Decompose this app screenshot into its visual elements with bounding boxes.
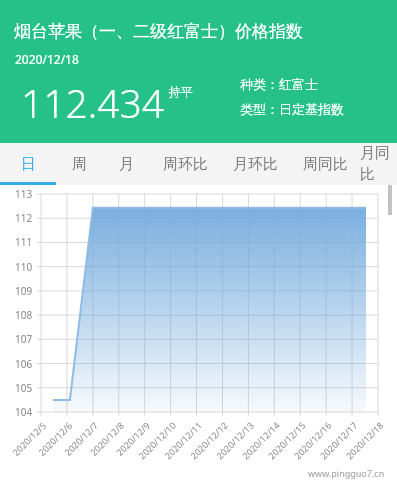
button[interactable]: 月 — [103, 143, 150, 185]
button[interactable]: 月同比 — [360, 143, 397, 185]
button[interactable]: 周环比 — [150, 143, 220, 185]
staticText: 日 — [21, 155, 36, 174]
staticText: 持平 — [169, 84, 193, 99]
staticText: 月环比 — [233, 155, 278, 174]
staticText: 周环比 — [163, 155, 208, 174]
staticText: 类型：日定基指数 — [240, 101, 344, 117]
button[interactable]: 周 — [56, 143, 103, 185]
button[interactable]: 月环比 — [220, 143, 290, 185]
staticText: 112.434 — [21, 76, 165, 129]
button[interactable]: 日 — [0, 143, 56, 185]
staticText: 月 — [119, 155, 134, 174]
staticText: 月同比 — [360, 144, 397, 184]
staticText: 种类：红富士 — [240, 76, 318, 92]
button[interactable]: 周同比 — [290, 143, 360, 185]
staticText: 烟台苹果（一、二级红富士）价格指数 — [14, 21, 303, 42]
staticText: 周 — [72, 155, 87, 174]
staticText: 周同比 — [303, 155, 348, 174]
staticText: 2020/12/18 — [15, 51, 79, 67]
